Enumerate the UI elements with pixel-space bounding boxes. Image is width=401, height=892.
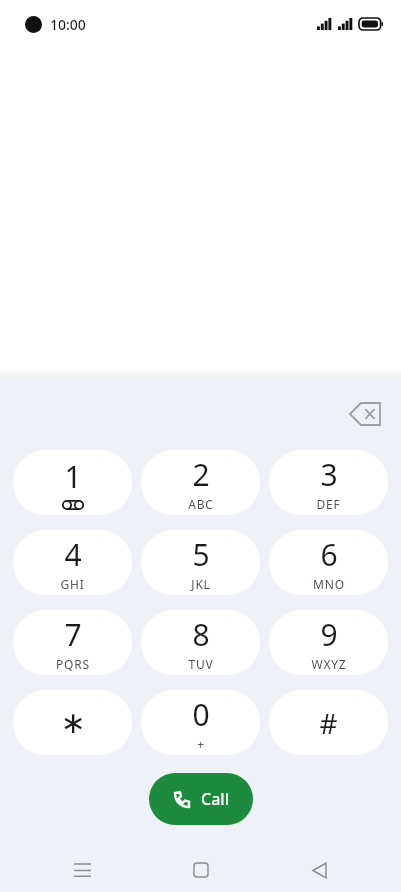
staticText: JKL xyxy=(191,576,211,592)
button[interactable]: 2 xyxy=(141,450,260,515)
staticText: 8 xyxy=(192,614,210,655)
button[interactable]: 4 xyxy=(13,530,132,595)
staticText: 2 xyxy=(192,454,210,495)
button[interactable]: Backspace xyxy=(337,386,393,442)
staticText: PQRS xyxy=(56,656,90,672)
staticText: 9 xyxy=(320,614,338,655)
staticText: TUV xyxy=(188,656,214,672)
staticText: ABC xyxy=(188,496,214,512)
button[interactable]: 5 xyxy=(141,530,260,595)
staticText: 10:00 xyxy=(50,15,86,34)
button[interactable]: 8 xyxy=(141,610,260,675)
staticText: 5 xyxy=(192,534,210,575)
button[interactable]: 7 xyxy=(13,610,132,675)
button[interactable]: 6 xyxy=(269,530,388,595)
button[interactable]: # xyxy=(269,690,388,755)
staticText: WXYZ xyxy=(311,656,347,672)
staticText: 4 xyxy=(64,534,82,575)
staticText: Call xyxy=(201,788,229,810)
staticText: 7 xyxy=(64,614,82,655)
button[interactable]: ∗ xyxy=(13,690,132,755)
button[interactable]: 0 xyxy=(141,690,260,755)
staticText: GHI xyxy=(60,576,85,592)
staticText: MNO xyxy=(313,576,345,592)
button[interactable]: Call xyxy=(149,773,253,825)
staticText: # xyxy=(319,704,338,742)
button[interactable]: Recent apps xyxy=(60,848,104,892)
staticText: 3 xyxy=(320,454,338,495)
staticText: + xyxy=(197,736,205,752)
staticText: DEF xyxy=(316,496,341,512)
button[interactable]: Home xyxy=(179,848,223,892)
button[interactable]: 9 xyxy=(269,610,388,675)
staticText: ∗ xyxy=(60,705,86,740)
staticText: 0 xyxy=(192,694,210,735)
button[interactable]: 3 xyxy=(269,450,388,515)
staticText: 6 xyxy=(320,534,338,575)
staticText: 1 xyxy=(64,456,82,497)
button[interactable]: 1 xyxy=(13,450,132,515)
button[interactable]: Back xyxy=(297,848,341,892)
